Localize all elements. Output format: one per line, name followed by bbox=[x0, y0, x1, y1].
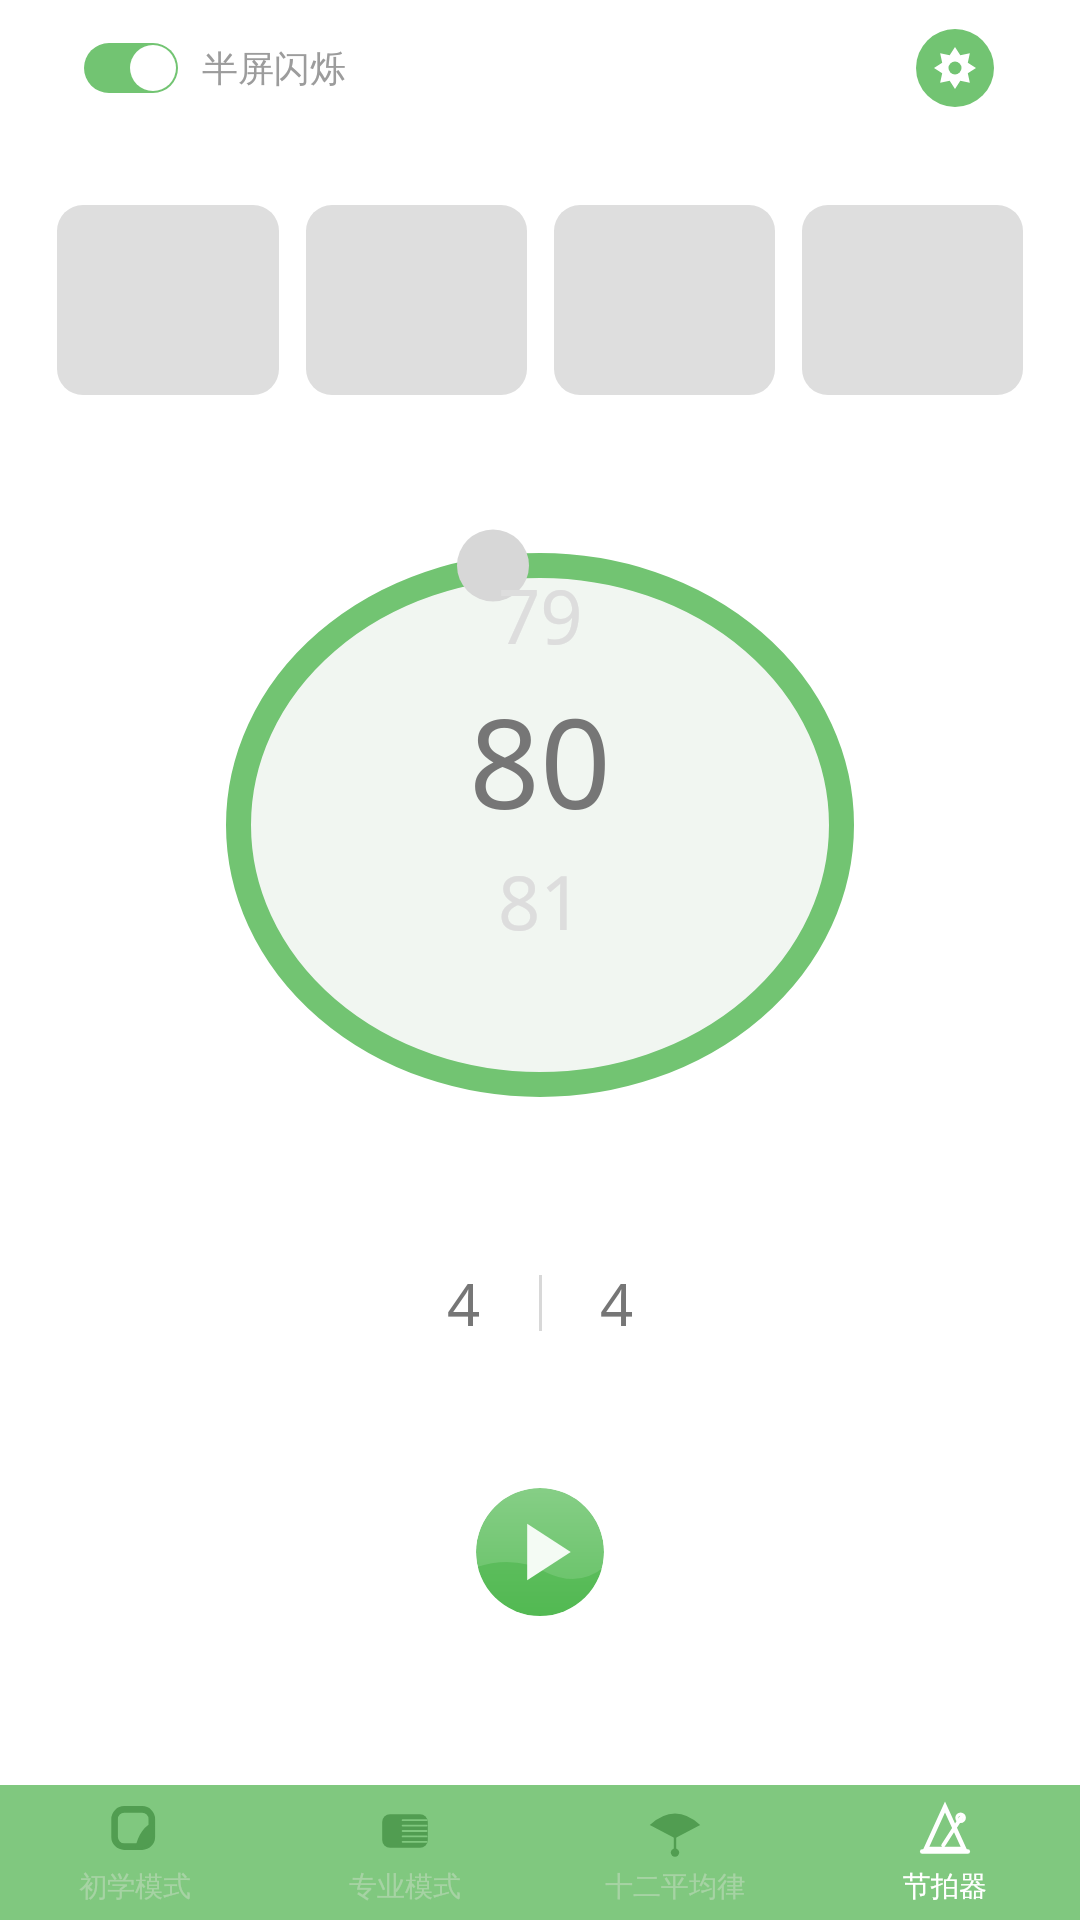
staticText: 初学模式 bbox=[79, 1869, 191, 1904]
button[interactable]: Play bbox=[476, 1488, 604, 1616]
staticText: 80 bbox=[469, 676, 611, 845]
button[interactable]: Beat 4 bbox=[802, 205, 1023, 395]
button[interactable]: 节拍器 bbox=[810, 1785, 1080, 1920]
button[interactable]: Beat 3 bbox=[554, 205, 775, 395]
button[interactable]: 4 bbox=[542, 1248, 692, 1358]
button[interactable]: Settings bbox=[916, 29, 994, 107]
staticText: 79 bbox=[498, 565, 583, 666]
button[interactable]: 4 bbox=[389, 1248, 539, 1358]
button[interactable]: Beat 2 bbox=[306, 205, 527, 395]
staticText: 4 bbox=[447, 1264, 481, 1343]
staticText: 4 bbox=[600, 1264, 634, 1343]
staticText: 81 bbox=[498, 851, 583, 952]
staticText: 节拍器 bbox=[903, 1869, 987, 1904]
button[interactable]: 半屏闪烁 bbox=[84, 43, 346, 93]
staticText: 半屏闪烁 bbox=[202, 46, 346, 91]
staticText: 专业模式 bbox=[349, 1869, 461, 1904]
staticText: 十二平均律 bbox=[605, 1869, 745, 1904]
button[interactable]: 专业模式 bbox=[270, 1785, 540, 1920]
button[interactable]: Beat 1 bbox=[57, 205, 279, 395]
button[interactable]: 十二平均律 bbox=[540, 1785, 810, 1920]
button[interactable]: Tempo 80 BPM bbox=[0, 517, 1080, 1137]
button[interactable]: 初学模式 bbox=[0, 1785, 270, 1920]
